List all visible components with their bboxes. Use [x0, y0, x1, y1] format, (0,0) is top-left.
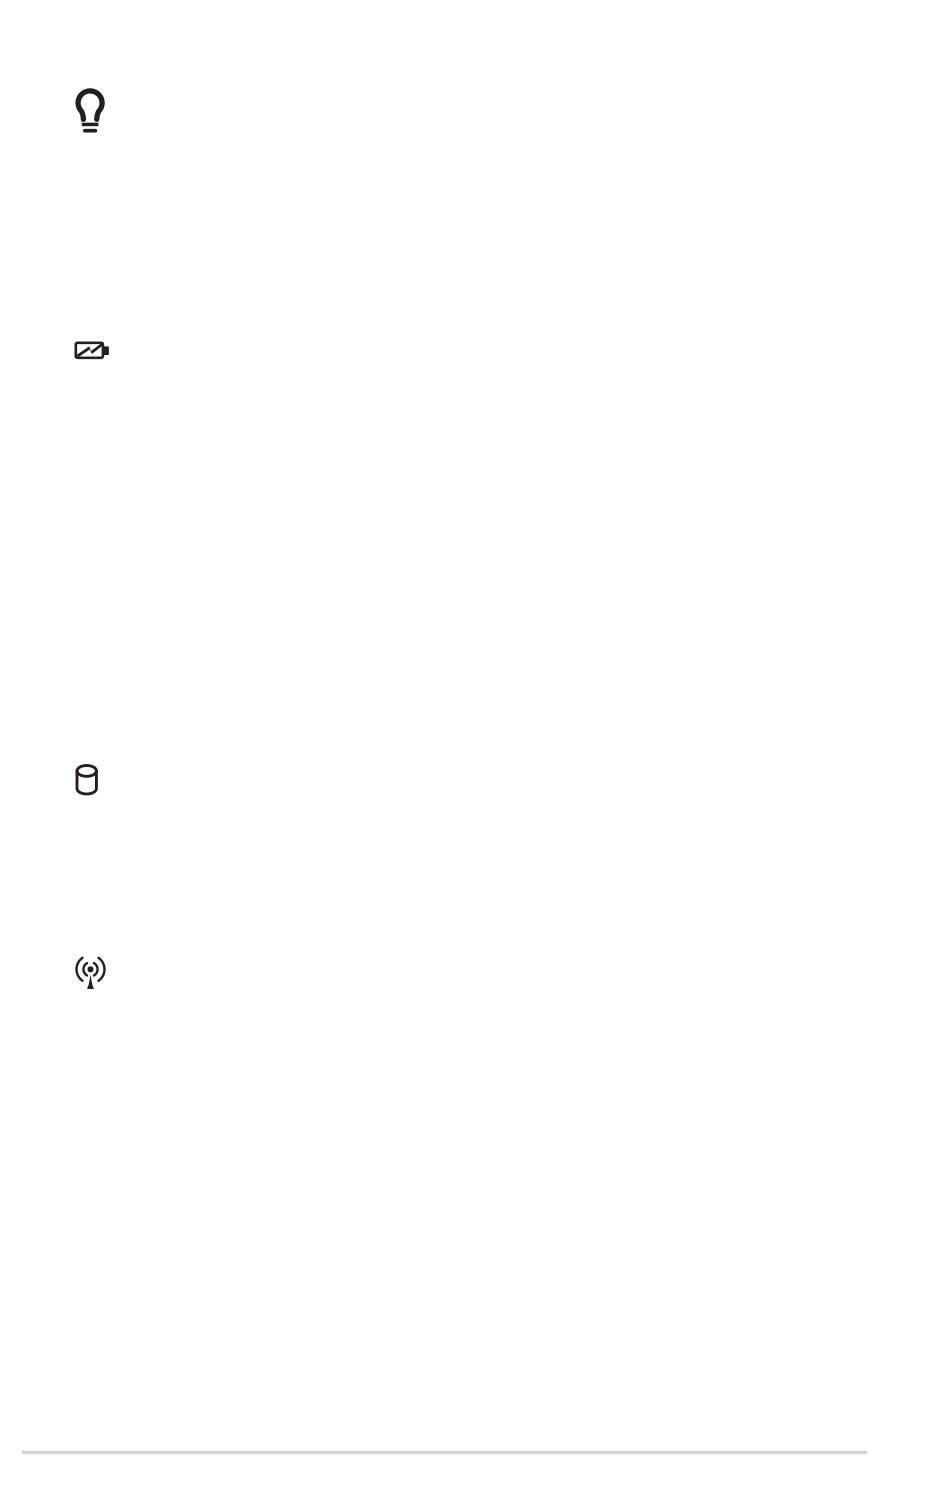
button[interactable]: Drive activity indicator [75, 764, 98, 795]
button[interactable]: Wireless indicator [75, 957, 107, 990]
button[interactable]: Battery charge indicator [74, 341, 109, 359]
button[interactable]: Power indicator [75, 88, 105, 136]
